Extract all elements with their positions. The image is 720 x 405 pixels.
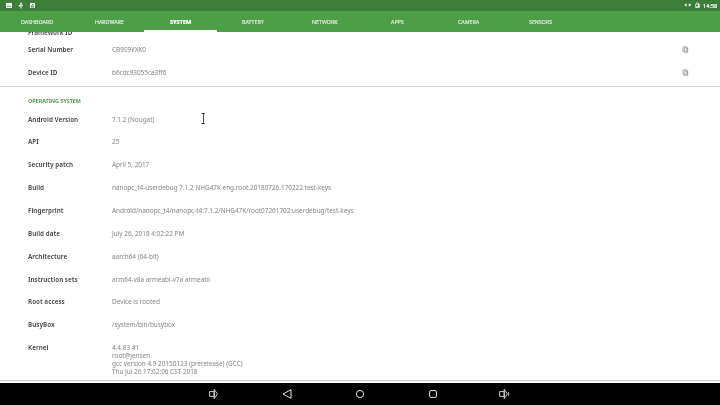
- staticText: Fingerprint: [28, 206, 64, 215]
- button[interactable]: Security patch: [0, 153, 720, 176]
- staticText: b6cdc93055ca3ff6: [112, 68, 167, 77]
- staticText: BusyBox: [28, 320, 55, 329]
- button[interactable]: API: [0, 130, 720, 153]
- button[interactable]: Home: [349, 383, 371, 405]
- staticText: Build: [28, 183, 45, 192]
- staticText: /system/bin/busybox: [112, 320, 176, 329]
- staticText: Architecture: [28, 252, 68, 261]
- staticText: 14:58: [703, 2, 718, 10]
- staticText: Framework ID: [28, 28, 73, 37]
- staticText: arm64-v8a armeabi-v7a armeabi: [112, 275, 210, 284]
- staticText: Device is rooted: [112, 297, 160, 306]
- staticText: aarch64 (64-bit): [112, 252, 159, 261]
- staticText: HARDWARE: [95, 18, 124, 25]
- button[interactable]: BusyBox: [0, 313, 720, 336]
- button[interactable]: Copy Serial Number: [678, 42, 692, 56]
- button[interactable]: APPS: [361, 11, 433, 32]
- button[interactable]: Build date: [0, 222, 720, 245]
- staticText: Build date: [28, 229, 60, 238]
- button[interactable]: Back: [276, 383, 298, 405]
- button[interactable]: Instruction sets: [0, 268, 720, 291]
- staticText: APPS: [391, 18, 404, 25]
- staticText: Android/nanopc_t4/nanopc-t4:7.1.2/NHG47K…: [112, 206, 354, 215]
- button[interactable]: Device ID: [0, 61, 720, 84]
- button[interactable]: Architecture: [0, 245, 720, 268]
- button[interactable]: HARDWARE: [73, 11, 145, 32]
- button[interactable]: Volume down: [203, 383, 225, 405]
- button[interactable]: DASHBOARD: [1, 11, 73, 32]
- staticText: 7.1.2 (Nougat): [112, 115, 155, 124]
- button[interactable]: Serial Number: [0, 38, 720, 61]
- staticText: Instruction sets: [28, 275, 78, 284]
- staticText: CAMERA: [458, 18, 480, 25]
- button[interactable]: NETWORK: [289, 11, 361, 32]
- staticText: OPERATING SYSTEM: [28, 97, 81, 104]
- button[interactable]: Build: [0, 176, 720, 199]
- staticText: nanopc_t4-userdebug 7.1.2 NHG47K eng.roo…: [112, 183, 332, 192]
- staticText: Serial Number: [28, 45, 74, 54]
- staticText: Android Version: [28, 115, 79, 124]
- button[interactable]: CAMERA: [433, 11, 505, 32]
- staticText: NETWORK: [312, 18, 338, 25]
- button[interactable]: SENSORS: [505, 11, 577, 32]
- button[interactable]: Kernel: [0, 336, 720, 372]
- button[interactable]: Root access: [0, 290, 720, 313]
- button[interactable]: Framework ID: [0, 21, 720, 44]
- staticText: 4.4.83 #1 root@jensen gcc version 4.9 20…: [112, 344, 243, 376]
- button[interactable]: BATTERY: [217, 11, 289, 32]
- button[interactable]: Copy Device ID: [678, 65, 692, 79]
- staticText: Security patch: [28, 160, 74, 169]
- staticText: API: [28, 137, 39, 146]
- staticText: April 5, 2017: [112, 160, 150, 169]
- staticText: 25: [112, 137, 120, 146]
- staticText: Device ID: [28, 68, 58, 77]
- button[interactable]: Volume up: [493, 383, 515, 405]
- staticText: BATTERY: [242, 18, 264, 25]
- button[interactable]: SYSTEM: [145, 11, 217, 32]
- staticText: SYSTEM: [170, 18, 192, 26]
- staticText: CB9S9YXK0: [112, 45, 146, 54]
- button[interactable]: Recents: [422, 383, 444, 405]
- staticText: July 26, 2018 4:02:22 PM: [112, 229, 185, 238]
- staticText: DASHBOARD: [21, 18, 53, 25]
- button[interactable]: Android Version: [0, 108, 720, 131]
- staticText: SENSORS: [529, 18, 553, 25]
- staticText: Kernel: [28, 343, 49, 352]
- staticText: Root access: [28, 297, 65, 306]
- button[interactable]: Fingerprint: [0, 199, 720, 222]
